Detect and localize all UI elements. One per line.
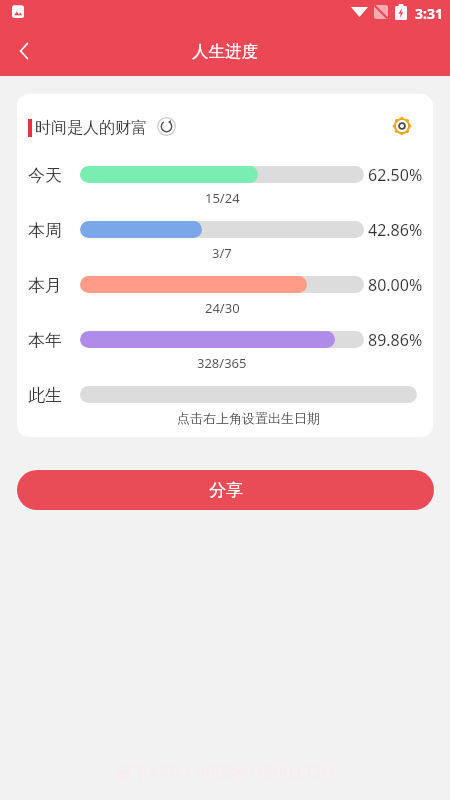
staticText: 80.00% bbox=[368, 274, 423, 296]
staticText: 分享 bbox=[209, 480, 243, 501]
button[interactable] bbox=[157, 117, 176, 136]
staticText: 本月 bbox=[28, 275, 62, 296]
button[interactable] bbox=[6, 33, 42, 69]
staticText: 24/30 bbox=[205, 299, 240, 317]
staticText: 89.86% bbox=[368, 329, 423, 351]
staticText: 今天 bbox=[28, 165, 62, 186]
staticText: 15/24 bbox=[205, 189, 240, 207]
staticText: 3/7 bbox=[212, 244, 232, 262]
staticText: 此生 bbox=[28, 385, 62, 406]
staticText: 本年 bbox=[28, 330, 62, 351]
staticText: 328/365 bbox=[197, 354, 247, 372]
staticText: 点击右上角设置出生日期 bbox=[177, 410, 320, 426]
staticText: 人生进度 bbox=[192, 41, 258, 62]
staticText: 时间是人的财富 bbox=[35, 118, 147, 138]
staticText: 42.86% bbox=[368, 219, 423, 241]
button[interactable] bbox=[392, 116, 412, 136]
button[interactable]: 分享 bbox=[17, 470, 434, 510]
staticText: 本周 bbox=[28, 220, 62, 241]
staticText: 3:31 bbox=[415, 4, 443, 23]
staticText: 62.50% bbox=[368, 164, 423, 186]
